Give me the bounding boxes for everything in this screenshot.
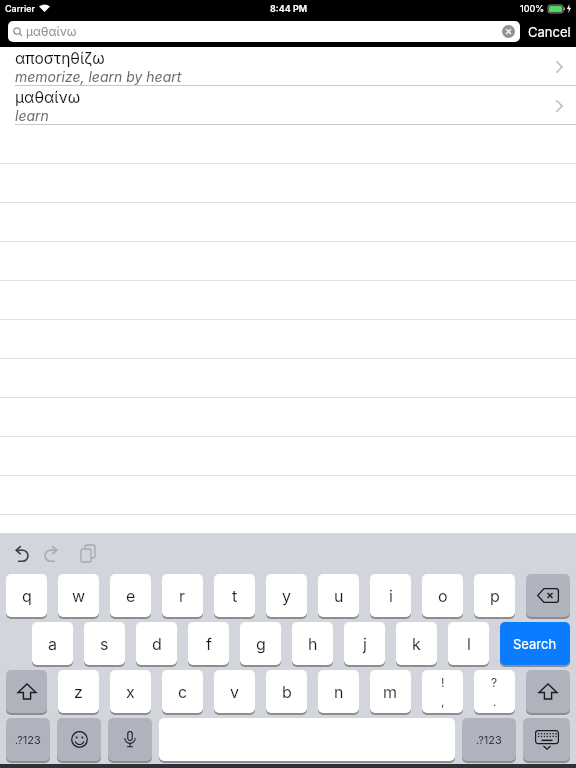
button[interactable]: n xyxy=(318,670,359,713)
button[interactable]: b xyxy=(266,670,307,713)
button[interactable]: v xyxy=(214,670,255,713)
staticText: μαθαίνω xyxy=(26,24,77,39)
button[interactable]: u xyxy=(318,574,359,617)
staticText: Search xyxy=(513,636,557,652)
staticText: ! xyxy=(441,675,445,690)
staticText: αποστηθίζω xyxy=(15,49,105,68)
staticText: j xyxy=(363,634,367,653)
button[interactable]: i xyxy=(370,574,411,617)
staticText: , xyxy=(441,694,445,709)
staticText: Carrier xyxy=(5,3,35,14)
button[interactable]: a xyxy=(32,622,73,665)
staticText: p xyxy=(490,586,500,605)
staticText: s xyxy=(100,634,109,653)
button[interactable] xyxy=(159,718,455,761)
staticText: z xyxy=(74,682,83,701)
button[interactable] xyxy=(502,25,515,38)
staticText: c xyxy=(178,682,188,701)
button[interactable]: e xyxy=(110,574,151,617)
button[interactable] xyxy=(57,718,101,761)
button[interactable]: d xyxy=(136,622,177,665)
button[interactable]: Search xyxy=(500,622,570,665)
button[interactable]: l xyxy=(448,622,489,665)
staticText: r xyxy=(179,586,186,605)
button[interactable] xyxy=(6,670,47,713)
staticText: .?123 xyxy=(476,733,502,746)
button[interactable]: ? xyxy=(474,670,515,713)
staticText: 100% xyxy=(520,3,545,14)
staticText: ? xyxy=(491,675,498,690)
staticText: e xyxy=(126,586,136,605)
button[interactable]: f xyxy=(188,622,229,665)
button[interactable]: r xyxy=(162,574,203,617)
staticText: memorize, learn by heart xyxy=(15,68,182,85)
staticText: y xyxy=(282,586,291,605)
staticText: n xyxy=(334,682,344,701)
button[interactable] xyxy=(80,545,97,563)
staticText: . xyxy=(493,694,497,709)
staticText: μαθαίνω xyxy=(15,88,81,107)
button[interactable]: t xyxy=(214,574,255,617)
staticText: o xyxy=(438,586,448,605)
button[interactable]: αποστηθίζω xyxy=(0,47,576,86)
staticText: q xyxy=(22,586,32,605)
button[interactable]: s xyxy=(84,622,125,665)
staticText: w xyxy=(72,586,86,605)
button[interactable]: j xyxy=(344,622,385,665)
button[interactable]: o xyxy=(422,574,463,617)
button[interactable]: g xyxy=(240,622,281,665)
button[interactable]: q xyxy=(6,574,47,617)
staticText: u xyxy=(334,586,344,605)
staticText: 8:44 PM xyxy=(270,3,307,14)
staticText: Cancel xyxy=(528,24,571,40)
button[interactable] xyxy=(526,574,570,617)
button[interactable]: y xyxy=(266,574,307,617)
staticText: t xyxy=(232,586,238,605)
staticText: k xyxy=(412,634,421,653)
staticText: learn xyxy=(15,107,49,124)
button[interactable]: .?123 xyxy=(462,718,516,761)
staticText: x xyxy=(126,682,135,701)
button[interactable]: p xyxy=(474,574,515,617)
staticText: a xyxy=(48,634,57,653)
staticText: l xyxy=(467,634,471,653)
button[interactable]: k xyxy=(396,622,437,665)
button[interactable]: w xyxy=(58,574,99,617)
staticText: h xyxy=(308,634,318,653)
button[interactable] xyxy=(526,670,570,713)
button[interactable]: ! xyxy=(422,670,463,713)
button[interactable]: x xyxy=(110,670,151,713)
button[interactable]: .?123 xyxy=(6,718,50,761)
button[interactable]: z xyxy=(58,670,99,713)
staticText: i xyxy=(389,586,393,605)
button[interactable]: μαθαίνω xyxy=(8,21,520,42)
staticText: g xyxy=(256,634,266,653)
button[interactable] xyxy=(523,718,570,761)
staticText: f xyxy=(206,634,212,653)
button[interactable]: Cancel xyxy=(528,21,571,42)
staticText: b xyxy=(282,682,292,701)
button[interactable] xyxy=(12,546,30,562)
button[interactable] xyxy=(108,718,152,761)
button[interactable]: m xyxy=(370,670,411,713)
button[interactable]: μαθαίνω xyxy=(0,86,576,125)
button[interactable] xyxy=(43,546,61,562)
staticText: d xyxy=(152,634,162,653)
staticText: m xyxy=(383,682,398,701)
button[interactable]: c xyxy=(162,670,203,713)
staticText: v xyxy=(230,682,239,701)
button[interactable]: h xyxy=(292,622,333,665)
staticText: .?123 xyxy=(15,733,41,746)
